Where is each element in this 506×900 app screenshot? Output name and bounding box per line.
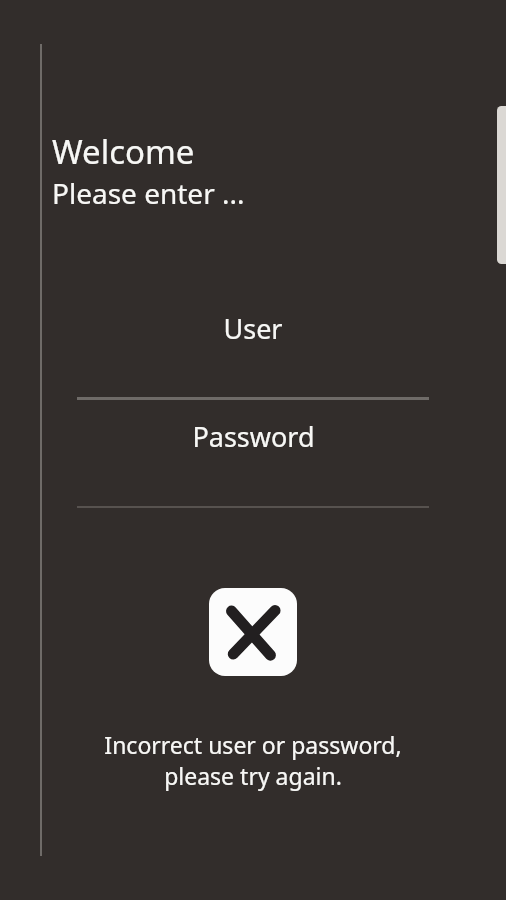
button[interactable]: Error	[209, 588, 297, 676]
staticText: Password	[192, 418, 315, 455]
button[interactable]: Password	[77, 418, 429, 508]
staticText: User	[223, 310, 283, 347]
staticText: please try again.	[164, 760, 342, 791]
button[interactable]: User	[77, 310, 429, 400]
staticText: Welcome	[52, 129, 195, 174]
staticText: Incorrect user or password,	[104, 729, 402, 760]
staticText: Please enter ...	[52, 174, 245, 212]
